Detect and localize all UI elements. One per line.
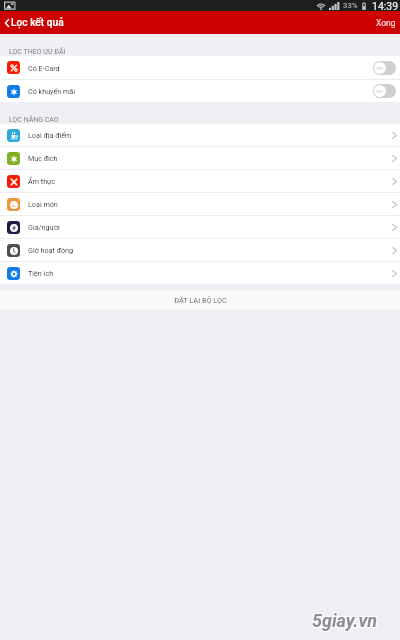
staticText: 5giay.vn (313, 609, 378, 630)
button[interactable]: Giá/người (0, 216, 400, 238)
staticText: 5giay.vn (312, 610, 377, 631)
staticText: Giờ hoạt động (28, 246, 74, 254)
button[interactable]: Tiện ích (0, 262, 400, 284)
staticText: 5giay.vn (311, 611, 376, 632)
button[interactable]: ĐẶT LẠI BỘ LỌC (0, 290, 400, 310)
staticText: Có E-Card (28, 64, 60, 72)
staticText: 5giay.vn (313, 610, 378, 631)
staticText: ĐẶT LẠI BỘ LỌC (174, 296, 227, 305)
staticText: Lọc kết quả (11, 17, 64, 29)
button[interactable]: Có E-Card (0, 56, 400, 79)
staticText: Ẩm thực (28, 177, 56, 185)
button[interactable]: Giờ hoạt động (0, 239, 400, 261)
staticText: Xong (376, 18, 396, 28)
staticText: 14:39 (372, 0, 399, 11)
button[interactable]: Loại món (0, 193, 400, 215)
staticText: LỌC NÂNG CAO (9, 116, 59, 124)
staticText: Có khuyến mãi (28, 87, 76, 95)
button[interactable]: Ẩm thực (0, 170, 400, 192)
staticText: 5giay.vn (311, 609, 376, 630)
button[interactable]: Loại địa điểm (0, 124, 400, 146)
button[interactable]: Xong (372, 14, 400, 32)
staticText: Giá/người (28, 223, 60, 231)
button[interactable]: Mục đích (0, 147, 400, 169)
staticText: 5giay.vn (312, 611, 377, 632)
staticText: 33% (343, 1, 358, 10)
button[interactable]: Lọc kết quả (0, 17, 160, 29)
staticText: LỌC THEO ƯU ĐÃI (9, 48, 66, 56)
staticText: OFF (376, 66, 384, 71)
staticText: OFF (376, 89, 384, 94)
button[interactable]: Toggle off (373, 84, 396, 98)
staticText: 5giay.vn (311, 610, 376, 631)
staticText: Tiện ích (28, 269, 54, 277)
staticText: 5giay.vn (312, 609, 377, 630)
button[interactable]: Có khuyến mãi (0, 80, 400, 102)
staticText: Loại món (28, 200, 58, 208)
button[interactable]: Toggle off (373, 61, 396, 75)
staticText: Loại địa điểm (28, 131, 72, 139)
staticText: 5giay.vn (313, 611, 378, 632)
staticText: Mục đích (28, 154, 58, 162)
